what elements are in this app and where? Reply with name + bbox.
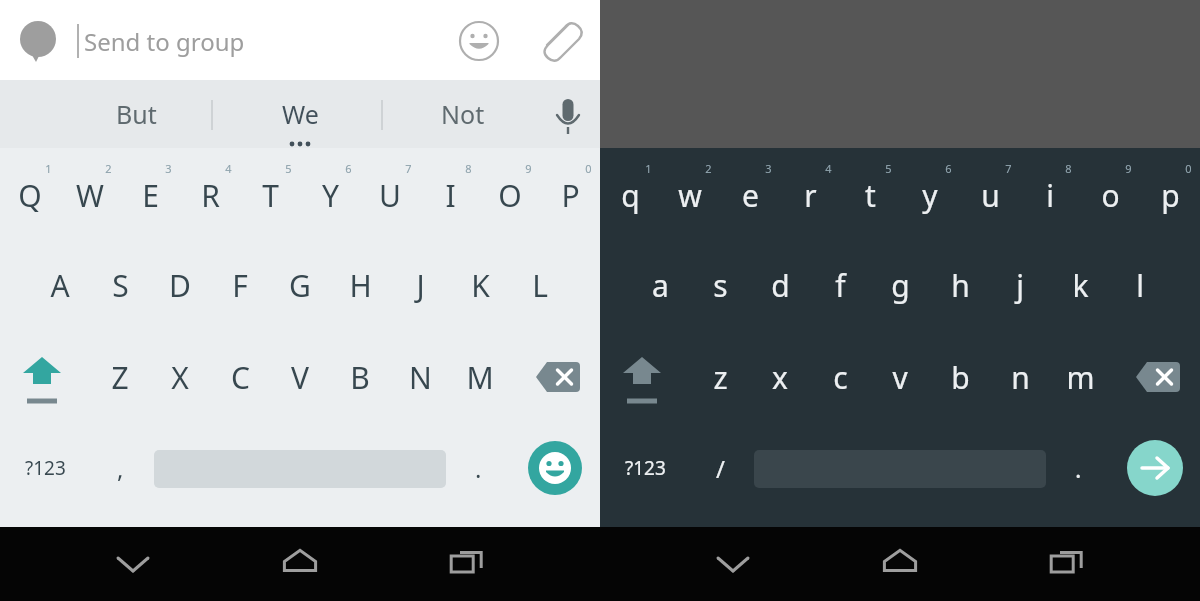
button[interactable]: P [540, 173, 600, 217]
button[interactable]: We [240, 80, 360, 148]
button[interactable]: k [1050, 263, 1110, 307]
button[interactable]: l [1110, 263, 1170, 307]
button[interactable]: I [420, 173, 480, 217]
button[interactable]: . [1056, 442, 1100, 494]
button[interactable]: Attach [533, 13, 587, 67]
button[interactable]: M [450, 355, 510, 399]
button[interactable]: Y [300, 173, 360, 217]
button[interactable]: Send to group [84, 20, 434, 62]
button[interactable]: Voice input [540, 87, 596, 141]
staticText: B [350, 357, 370, 398]
staticText: L [532, 265, 548, 306]
button[interactable]: g [870, 263, 930, 307]
staticText: G [289, 265, 311, 306]
button[interactable]: W [60, 173, 120, 217]
button[interactable]: n [990, 355, 1050, 399]
staticText: 8 [465, 161, 472, 176]
staticText: T [262, 175, 279, 216]
staticText: 2 [705, 161, 712, 176]
button[interactable]: Shift [8, 345, 76, 409]
button[interactable]: E [120, 173, 180, 217]
button[interactable]: G [270, 263, 330, 307]
button[interactable]: , [96, 442, 144, 494]
staticText: 2 [105, 161, 112, 176]
button[interactable]: d [750, 263, 810, 307]
staticText: p [1161, 175, 1180, 216]
button[interactable]: Backspace [1132, 355, 1188, 399]
button[interactable]: K [450, 263, 510, 307]
button[interactable]: f [810, 263, 870, 307]
staticText: q [621, 175, 640, 216]
button[interactable]: Recents [1033, 527, 1103, 601]
button[interactable]: Recents [433, 527, 503, 601]
staticText: 3 [165, 161, 172, 176]
button[interactable]: q [600, 173, 660, 217]
button[interactable]: ?123 [10, 442, 80, 494]
button[interactable]: N [390, 355, 450, 399]
button[interactable]: L [510, 263, 570, 307]
button[interactable]: m [1050, 355, 1110, 399]
button[interactable]: D [150, 263, 210, 307]
button[interactable]: e [720, 173, 780, 217]
button[interactable]: Home [865, 527, 935, 601]
button[interactable]: V [270, 355, 330, 399]
staticText: E [142, 175, 159, 216]
button[interactable]: Q [0, 173, 60, 217]
staticText: b [951, 357, 970, 398]
button[interactable]: H [330, 263, 390, 307]
button[interactable]: ?123 [610, 442, 680, 494]
staticText: n [1011, 357, 1030, 398]
button[interactable]: F [210, 263, 270, 307]
staticText: u [981, 175, 1000, 216]
button[interactable]: Z [90, 355, 150, 399]
button[interactable]: Back [698, 527, 768, 601]
staticText: 9 [525, 161, 532, 176]
staticText: R [201, 175, 220, 216]
button[interactable]: r [780, 173, 840, 217]
button[interactable]: X [150, 355, 210, 399]
button[interactable]: B [330, 355, 390, 399]
button[interactable]: p [1140, 173, 1200, 217]
button[interactable]: J [390, 263, 450, 307]
button[interactable]: a [630, 263, 690, 307]
button[interactable]: S [90, 263, 150, 307]
staticText: D [169, 265, 191, 306]
button[interactable]: u [960, 173, 1020, 217]
button[interactable]: z [690, 355, 750, 399]
button[interactable]: T [240, 173, 300, 217]
button[interactable]: But [76, 80, 196, 148]
button[interactable]: Shift [608, 345, 676, 409]
button[interactable]: R [180, 173, 240, 217]
button[interactable]: v [870, 355, 930, 399]
button[interactable]: Emoji [527, 440, 583, 496]
button[interactable]: j [990, 263, 1050, 307]
button[interactable]: Send [1127, 440, 1183, 496]
button[interactable]: c [810, 355, 870, 399]
button[interactable]: C [210, 355, 270, 399]
staticText: m [1066, 357, 1095, 398]
button[interactable]: Home [265, 527, 335, 601]
button[interactable]: x [750, 355, 810, 399]
button[interactable]: Back [98, 527, 168, 601]
staticText: . [1075, 452, 1082, 485]
button[interactable]: y [900, 173, 960, 217]
button[interactable]: O [480, 173, 540, 217]
button[interactable]: Emoji [452, 14, 506, 68]
button[interactable]: b [930, 355, 990, 399]
staticText: H [349, 265, 372, 306]
button[interactable]: w [660, 173, 720, 217]
button[interactable]: t [840, 173, 900, 217]
button[interactable]: U [360, 173, 420, 217]
button[interactable]: o [1080, 173, 1140, 217]
button[interactable]: s [690, 263, 750, 307]
staticText: Q [18, 175, 42, 216]
button[interactable]: Backspace [532, 355, 588, 399]
button[interactable]: / [696, 442, 744, 494]
button[interactable]: h [930, 263, 990, 307]
button[interactable]: i [1020, 173, 1080, 217]
button[interactable]: A [30, 263, 90, 307]
button[interactable]: Not [403, 80, 523, 148]
button[interactable]: . [456, 442, 500, 494]
